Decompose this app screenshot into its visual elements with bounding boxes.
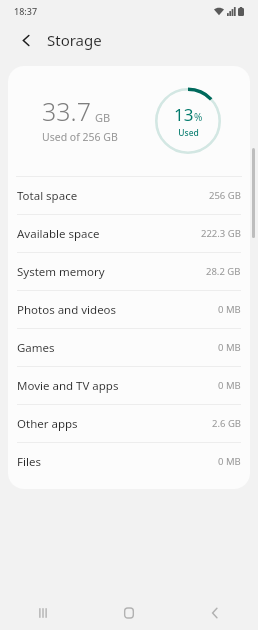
staticText: 13 [174,103,194,126]
staticText: 0 MB [218,379,241,392]
button[interactable]: Total space [8,177,250,214]
staticText: Total space [17,188,78,204]
staticText: 2.6 GB [212,417,241,430]
staticText: Used [178,127,199,139]
staticText: 222.3 GB [201,227,241,240]
staticText: Movie and TV apps [17,378,119,394]
staticText: System memory [17,264,105,280]
staticText: Games [17,340,55,356]
staticText: Storage [47,30,102,50]
button[interactable]: Back [13,27,39,53]
staticText: Files [17,454,41,470]
staticText: Photos and videos [17,302,117,318]
button[interactable]: Photos and videos [8,291,250,328]
staticText: Used of 256 GB [42,130,118,144]
button[interactable]: Home [86,596,172,630]
staticText: Other apps [17,416,78,432]
button[interactable]: Available space [8,215,250,252]
staticText: GB [95,110,111,125]
staticText: 18:37 [14,5,38,17]
staticText: Available space [17,226,100,242]
button[interactable]: Other apps [8,405,250,442]
staticText: 28.2 GB [206,265,241,278]
staticText: % [194,110,203,124]
button[interactable]: Games [8,329,250,366]
button[interactable]: Back [172,596,258,630]
staticText: 0 MB [218,455,241,468]
staticText: 0 MB [218,341,241,354]
button[interactable]: Movie and TV apps [8,367,250,404]
staticText: 256 GB [209,189,241,202]
staticText: 0 MB [218,303,241,316]
button[interactable]: System memory [8,253,250,290]
button[interactable]: Files [8,443,250,480]
button[interactable]: Recents [0,596,86,630]
staticText: 33.7 [42,94,91,128]
